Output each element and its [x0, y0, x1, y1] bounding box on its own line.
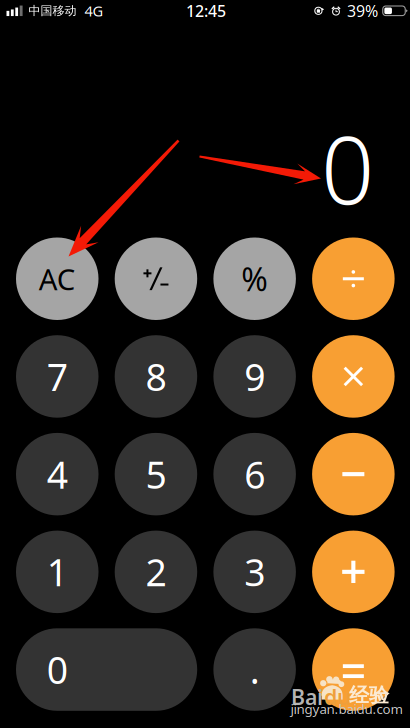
button[interactable]: Subtract — [312, 433, 395, 515]
button[interactable]: 1 — [16, 531, 98, 613]
staticText: . — [250, 645, 260, 694]
staticText: du — [324, 682, 351, 711]
button[interactable]: 5 — [115, 433, 197, 515]
staticText: Bai — [291, 682, 323, 711]
button[interactable]: % — [213, 237, 296, 320]
button[interactable]: Add — [312, 531, 395, 613]
button[interactable]: AC — [16, 237, 98, 320]
staticText: 0 — [321, 106, 374, 230]
staticText: 3 — [244, 547, 265, 597]
staticText: 5 — [145, 449, 166, 499]
staticText: jingyan.baidu.com — [290, 700, 402, 718]
staticText: 2 — [145, 547, 166, 597]
button[interactable]: Plus minus — [115, 237, 197, 320]
staticText: 0 — [47, 645, 68, 694]
staticText: 中国移动 — [28, 3, 76, 18]
staticText: % — [241, 257, 268, 300]
staticText: 7 — [47, 352, 68, 401]
staticText: 9 — [244, 352, 265, 401]
staticText: AC — [39, 259, 76, 298]
staticText: 6 — [244, 449, 265, 499]
button[interactable]: Equals — [312, 628, 395, 711]
button[interactable]: 2 — [115, 531, 197, 613]
staticText: 39% — [347, 0, 378, 21]
staticText: 12:45 — [186, 0, 226, 21]
button[interactable]: 0 — [16, 628, 197, 711]
staticText: 4G — [84, 1, 103, 21]
staticText: 经验 — [349, 683, 389, 708]
button[interactable]: Divide — [312, 237, 395, 320]
staticText: 1 — [47, 547, 68, 597]
button[interactable]: 9 — [213, 335, 296, 418]
button[interactable]: . — [213, 628, 296, 711]
button[interactable]: 6 — [213, 433, 296, 515]
button[interactable]: Multiply — [312, 335, 395, 418]
button[interactable]: 7 — [16, 335, 98, 418]
button[interactable]: 3 — [213, 531, 296, 613]
button[interactable]: 8 — [115, 335, 197, 418]
button[interactable]: 4 — [16, 433, 98, 515]
staticText: 4 — [47, 449, 68, 499]
staticText: 8 — [145, 352, 166, 401]
